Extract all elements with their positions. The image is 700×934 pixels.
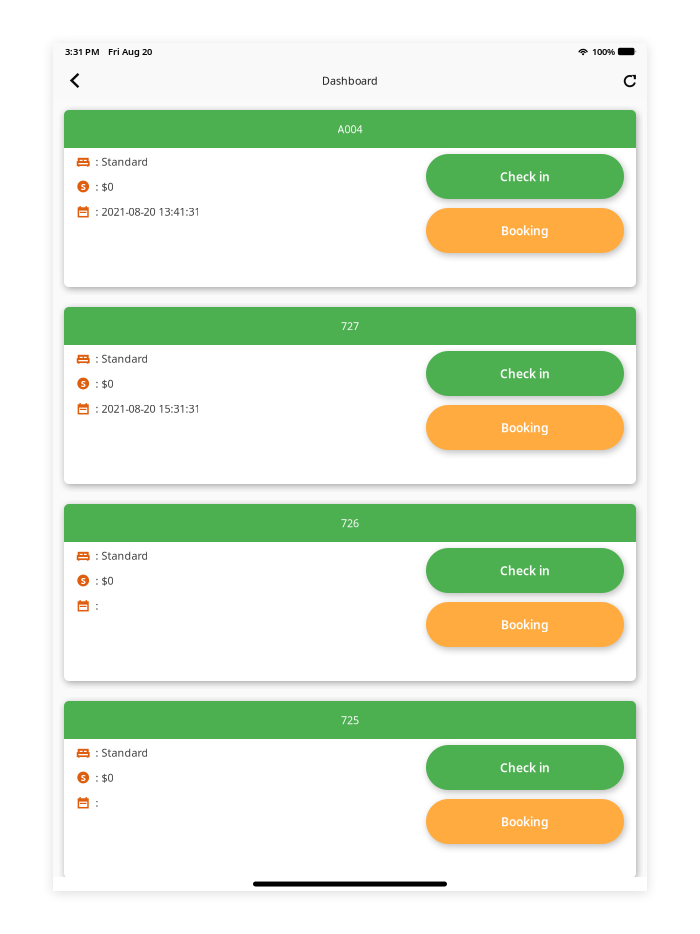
staticText: Check in	[500, 168, 550, 184]
staticText: : $0	[95, 770, 113, 785]
staticText: 725	[341, 713, 359, 727]
staticText: S	[81, 574, 86, 587]
staticText: :	[95, 795, 101, 810]
staticText: A004	[337, 122, 362, 136]
button[interactable]: Booking	[426, 208, 624, 253]
button[interactable]: Booking	[426, 602, 624, 647]
staticText: Check in	[500, 759, 550, 775]
staticText: :	[95, 598, 101, 613]
button[interactable]: Refresh	[613, 60, 647, 100]
button[interactable]: Booking	[426, 799, 624, 844]
staticText: S	[81, 771, 86, 784]
staticText: Booking	[501, 813, 549, 829]
staticText: Booking	[501, 616, 549, 632]
staticText: Booking	[501, 222, 549, 238]
staticText: Fri Aug 20	[108, 45, 152, 58]
staticText: : Standard	[95, 548, 148, 563]
staticText: 3:31 PM	[65, 45, 100, 58]
staticText: 100%	[592, 45, 615, 58]
staticText: : Standard	[95, 745, 148, 760]
staticText: : 2021-08-20 15:31:31	[95, 401, 200, 416]
staticText: S	[81, 180, 86, 193]
button[interactable]: Check in	[426, 154, 624, 199]
staticText: : $0	[95, 179, 113, 194]
button[interactable]: Check in	[426, 351, 624, 396]
staticText: Booking	[501, 419, 549, 435]
staticText: : 2021-08-20 13:41:31	[95, 204, 200, 219]
button[interactable]: Check in	[426, 548, 624, 593]
staticText: : Standard	[95, 154, 148, 169]
button[interactable]: Booking	[426, 405, 624, 450]
staticText: Check in	[500, 365, 550, 381]
staticText: 727	[341, 319, 359, 333]
staticText: Dashboard	[322, 73, 378, 88]
staticText: S	[81, 377, 86, 390]
staticText: : $0	[95, 573, 113, 588]
staticText: Check in	[500, 562, 550, 578]
staticText: : Standard	[95, 351, 148, 366]
staticText: : $0	[95, 376, 113, 391]
button[interactable]: Check in	[426, 745, 624, 790]
button[interactable]: Back	[58, 60, 92, 100]
staticText: 726	[341, 516, 359, 530]
